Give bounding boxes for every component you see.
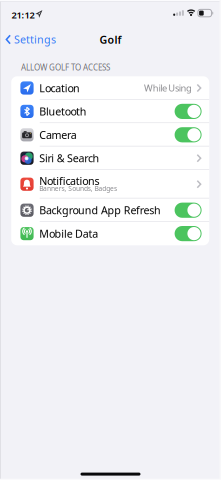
staticText: Mobile Data	[39, 226, 98, 241]
button[interactable]: Back to Settings	[5, 32, 56, 47]
staticText: Banners, Sounds, Badges	[39, 184, 117, 193]
staticText: Golf	[99, 33, 121, 47]
button[interactable]: On	[175, 104, 202, 119]
button[interactable]: Location	[11, 76, 209, 100]
staticText: While Using	[144, 82, 192, 94]
staticText: Camera	[39, 128, 77, 142]
button[interactable]: Background App Refresh	[11, 198, 209, 222]
button[interactable]: Mobile Data	[11, 222, 209, 245]
staticText: Settings	[14, 32, 56, 47]
staticText: Background App Refresh	[39, 203, 161, 217]
button[interactable]: Bluetooth	[11, 100, 209, 123]
button[interactable]: On	[175, 203, 202, 218]
button[interactable]: On	[175, 226, 202, 241]
button[interactable]: On	[175, 127, 202, 142]
button[interactable]: Camera	[11, 123, 209, 146]
staticText: Notifications	[39, 174, 100, 188]
staticText: ALLOW GOLF TO ACCESS	[21, 62, 110, 73]
staticText: Siri & Search	[39, 151, 100, 165]
staticText: Bluetooth	[39, 104, 87, 118]
staticText: Location	[39, 81, 80, 95]
button[interactable]: Notifications	[11, 170, 209, 198]
staticText: 21:12	[11, 9, 34, 21]
button[interactable]: Siri & Search	[11, 146, 209, 170]
